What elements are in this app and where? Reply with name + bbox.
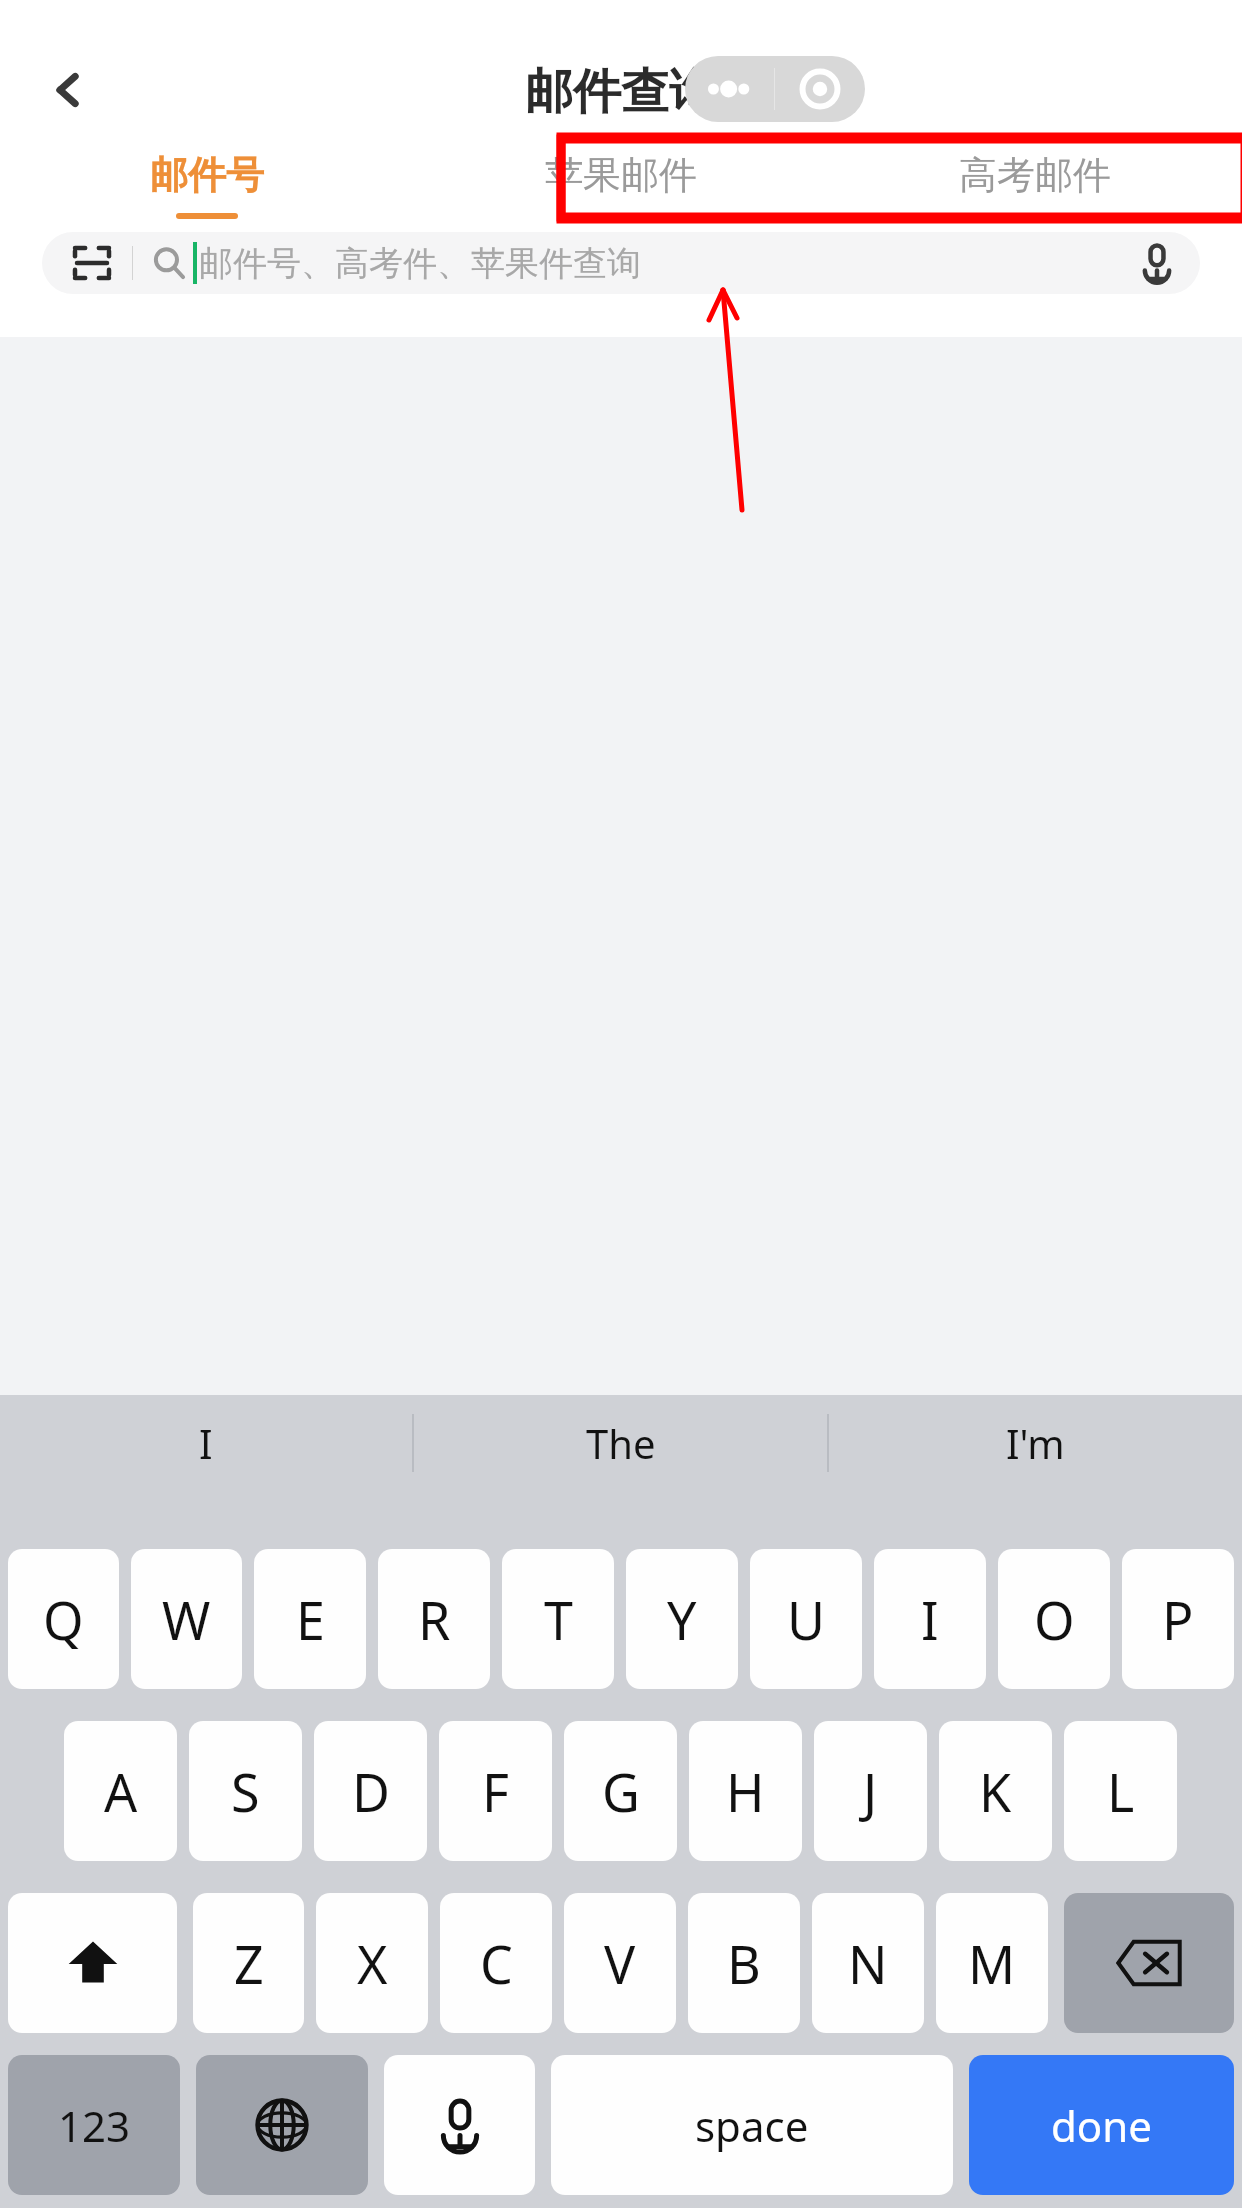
button[interactable]: done — [969, 2055, 1234, 2195]
staticText: K — [979, 1756, 1012, 1827]
button[interactable]: X — [316, 1893, 428, 2033]
button[interactable]: 邮件号 — [0, 137, 414, 219]
button[interactable]: Voice input — [384, 2055, 535, 2195]
staticText: M — [968, 1928, 1016, 1999]
button[interactable]: 苹果邮件 — [414, 137, 828, 219]
staticText: L — [1107, 1756, 1135, 1827]
button[interactable]: R — [378, 1549, 490, 1689]
button[interactable]: Q — [8, 1549, 119, 1689]
staticText: R — [418, 1584, 451, 1655]
staticText: Q — [43, 1584, 84, 1655]
button[interactable]: L — [1064, 1721, 1177, 1861]
staticText: B — [727, 1928, 761, 1999]
staticText: 123 — [58, 2097, 131, 2154]
staticText: space — [695, 2097, 809, 2154]
staticText: 苹果邮件 — [545, 151, 697, 199]
staticText: E — [296, 1584, 325, 1655]
button[interactable]: Z — [193, 1893, 304, 2033]
staticText: I — [199, 1416, 213, 1470]
button[interactable]: I — [874, 1549, 986, 1689]
staticText: V — [604, 1928, 636, 1999]
staticText: 高考邮件 — [959, 151, 1111, 199]
button[interactable]: Change keyboard language — [196, 2055, 368, 2195]
staticText: P — [1162, 1584, 1194, 1655]
staticText: J — [863, 1756, 878, 1827]
staticText: 邮件查询 — [0, 62, 1242, 122]
button[interactable]: V — [564, 1893, 676, 2033]
button[interactable]: C — [440, 1893, 552, 2033]
button[interactable]: U — [750, 1549, 862, 1689]
button[interactable]: P — [1122, 1549, 1234, 1689]
staticText: S — [231, 1756, 260, 1827]
button[interactable]: Shift — [8, 1893, 177, 2033]
button[interactable]: B — [688, 1893, 800, 2033]
button[interactable]: 123 — [8, 2055, 180, 2195]
staticText: D — [352, 1756, 390, 1827]
button[interactable]: 高考邮件 — [828, 137, 1242, 219]
staticText: A — [104, 1756, 138, 1827]
button[interactable]: Back — [20, 42, 116, 138]
staticText: W — [162, 1584, 211, 1655]
staticText: done — [1051, 2097, 1152, 2154]
staticText: H — [726, 1756, 765, 1827]
staticText: O — [1034, 1584, 1075, 1655]
button[interactable]: G — [564, 1721, 677, 1861]
button[interactable]: K — [939, 1721, 1052, 1861]
button[interactable]: S — [189, 1721, 302, 1861]
button[interactable]: I'm — [829, 1395, 1242, 1491]
button[interactable]: I — [0, 1395, 412, 1491]
button[interactable]: A — [64, 1721, 177, 1861]
staticText: G — [602, 1756, 640, 1827]
button[interactable]: Scan — [42, 232, 1200, 294]
button[interactable]: Y — [626, 1549, 738, 1689]
staticText: 邮件号、高考件、苹果件查询 — [199, 242, 641, 285]
button[interactable]: T — [502, 1549, 614, 1689]
staticText: N — [848, 1928, 888, 1999]
staticText: I'm — [1006, 1416, 1065, 1470]
button[interactable]: M — [936, 1893, 1048, 2033]
staticText: The — [586, 1416, 656, 1470]
button[interactable]: E — [254, 1549, 366, 1689]
staticText: F — [482, 1756, 509, 1827]
staticText: Y — [667, 1584, 697, 1655]
button[interactable]: O — [998, 1549, 1110, 1689]
button[interactable]: D — [314, 1721, 427, 1861]
button[interactable]: J — [814, 1721, 927, 1861]
button[interactable]: space — [551, 2055, 953, 2195]
other: Scan — [70, 241, 114, 285]
button[interactable]: N — [812, 1893, 924, 2033]
button[interactable]: The — [414, 1395, 827, 1491]
staticText: 邮件号 — [150, 151, 264, 199]
staticText: T — [544, 1584, 573, 1655]
button[interactable]: Backspace — [1064, 1893, 1234, 2033]
staticText: U — [787, 1584, 826, 1655]
button[interactable]: More menu — [685, 56, 774, 122]
button[interactable]: H — [689, 1721, 802, 1861]
staticText: Z — [234, 1928, 264, 1999]
button[interactable]: F — [439, 1721, 552, 1861]
button[interactable]: Close — [775, 56, 865, 122]
staticText: C — [480, 1928, 513, 1999]
button[interactable]: Voice search — [1126, 232, 1188, 294]
staticText: X — [357, 1928, 388, 1999]
staticText: I — [921, 1584, 939, 1655]
button[interactable]: W — [131, 1549, 242, 1689]
